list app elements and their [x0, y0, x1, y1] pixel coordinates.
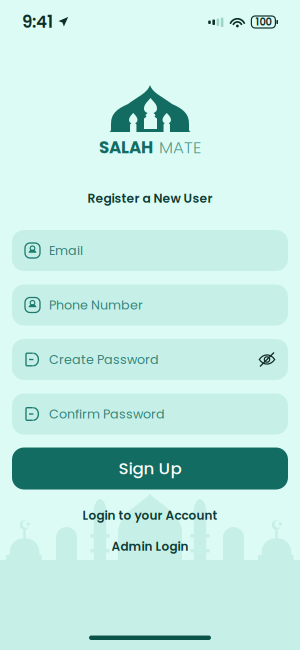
- staticText: MATE: [159, 136, 201, 159]
- staticText: 9:41: [22, 10, 53, 34]
- button[interactable]: Login to your Account: [72, 506, 227, 524]
- button[interactable]: Show password: [258, 351, 276, 367]
- staticText: Admin Login: [111, 538, 188, 555]
- staticText: Sign Up: [118, 457, 181, 480]
- button[interactable]: Sign Up: [12, 447, 288, 489]
- staticText: Confirm Password: [49, 405, 165, 423]
- button[interactable]: Admin Login: [101, 537, 198, 555]
- staticText: Register a New User: [87, 190, 212, 207]
- staticText: Email: [49, 242, 83, 259]
- staticText: Login to your Account: [82, 507, 217, 524]
- staticText: SALAH: [99, 136, 153, 159]
- staticText: Create Password: [49, 351, 159, 368]
- staticText: 100: [255, 15, 271, 29]
- staticText: Phone Number: [49, 296, 143, 314]
